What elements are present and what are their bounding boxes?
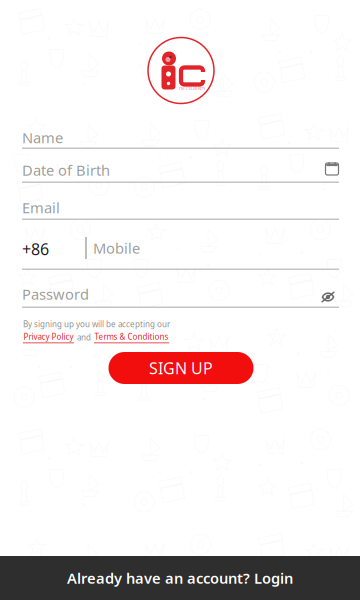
button[interactable]: SIGN UP: [108, 352, 253, 384]
button[interactable]: Date of Birth: [22, 153, 339, 183]
button[interactable]: Terms & Conditions: [94, 331, 169, 343]
button[interactable]: +86: [22, 224, 339, 270]
staticText: Name: [22, 128, 63, 147]
button[interactable]: Name: [22, 120, 339, 149]
staticText: Password: [22, 284, 89, 304]
button[interactable]: Already have an account? Login: [0, 556, 360, 600]
staticText: Mobile: [93, 238, 140, 258]
staticText: +86: [22, 238, 49, 260]
staticText: I'M CELEBRITY: [179, 86, 205, 91]
staticText: Terms & Conditions: [94, 331, 168, 342]
staticText: Privacy Policy: [23, 331, 73, 342]
staticText: Email: [22, 198, 60, 217]
button[interactable]: Privacy Policy: [23, 331, 74, 343]
staticText: By signing up you will be accepting our: [23, 319, 170, 329]
staticText: and: [77, 332, 91, 343]
staticText: Date of Birth: [22, 160, 110, 180]
staticText: SIGN UP: [149, 357, 213, 379]
button[interactable]: Password: [22, 275, 339, 308]
staticText: Already have an account? Login: [67, 568, 293, 588]
button[interactable]: Email: [22, 188, 339, 220]
